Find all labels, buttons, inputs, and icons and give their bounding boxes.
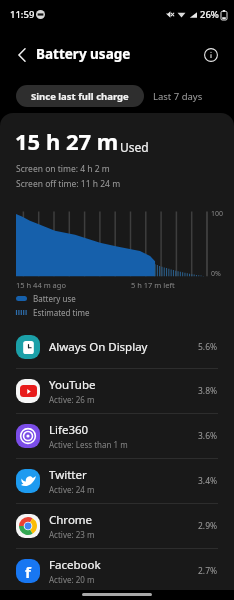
staticText: 5.6%: [198, 341, 218, 353]
staticText: Life360: [49, 422, 89, 438]
button[interactable]: Navigate up: [8, 41, 35, 68]
staticText: Since last full charge: [31, 90, 129, 103]
button[interactable]: Life360: [0, 414, 234, 458]
staticText: f: [25, 562, 31, 582]
staticText: 100: [211, 209, 224, 219]
staticText: 3.4%: [198, 475, 218, 487]
staticText: Estimated time: [33, 307, 90, 318]
staticText: 26%: [200, 8, 219, 21]
button[interactable]: Last 7 days: [144, 85, 212, 107]
staticText: 5 h 17 m left: [131, 280, 175, 290]
staticText: Active: 23 m: [49, 529, 95, 540]
staticText: Battery usage: [36, 45, 131, 63]
button[interactable]: More information: [199, 43, 223, 67]
staticText: 0%: [211, 269, 221, 278]
staticText: Chrome: [49, 512, 93, 528]
staticText: Twitter: [49, 467, 87, 483]
staticText: 15 h 27 m: [15, 126, 119, 156]
button[interactable]: YouTube: [0, 369, 234, 413]
button[interactable]: f: [0, 549, 234, 593]
staticText: Used: [120, 139, 149, 155]
button[interactable]: Since last full charge: [16, 85, 144, 107]
staticText: Active: 20 m: [49, 574, 95, 585]
staticText: Active: Less than 1 m: [49, 439, 128, 450]
staticText: Facebook: [49, 557, 101, 573]
staticText: 11:59: [10, 8, 35, 21]
staticText: Active: 24 m: [49, 484, 95, 495]
staticText: 3.8%: [198, 385, 218, 397]
button[interactable]: Always On Display: [0, 325, 234, 368]
button[interactable]: Twitter: [0, 459, 234, 503]
staticText: Always On Display: [49, 339, 148, 355]
staticText: 15 h 44 m ago: [16, 280, 66, 290]
staticText: 2.9%: [198, 520, 218, 532]
staticText: Battery use: [33, 293, 76, 304]
staticText: Screen on time: 4 h 2 m: [16, 163, 110, 175]
staticText: YouTube: [49, 377, 96, 393]
staticText: 3.6%: [198, 430, 218, 442]
staticText: Screen off time: 11 h 24 m: [16, 178, 121, 190]
staticText: Last 7 days: [153, 90, 203, 103]
button[interactable]: Chrome: [0, 504, 234, 548]
staticText: Active: 26 m: [49, 394, 95, 405]
staticText: 2.7%: [198, 565, 218, 577]
